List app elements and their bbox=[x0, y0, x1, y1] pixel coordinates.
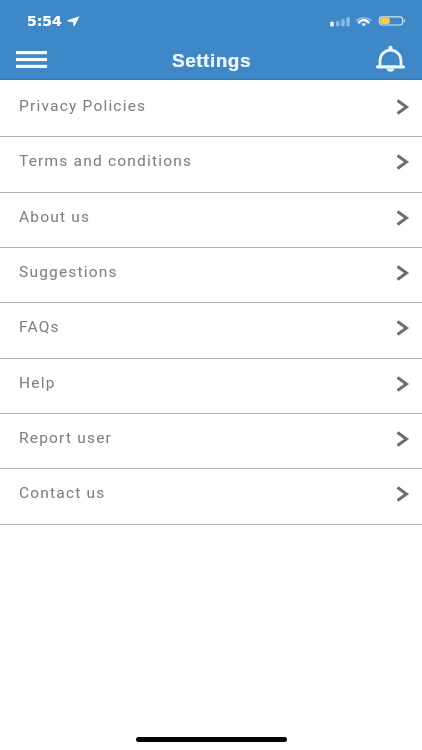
button[interactable]: Report user bbox=[0, 414, 422, 469]
staticText: Contact us bbox=[19, 484, 106, 502]
button[interactable]: Privacy Policies bbox=[0, 82, 422, 137]
button[interactable]: Contact us bbox=[0, 469, 422, 524]
staticText: Help bbox=[19, 374, 56, 392]
staticText: Terms and conditions bbox=[19, 152, 193, 170]
button[interactable]: Help bbox=[0, 359, 422, 414]
button[interactable]: Menu bbox=[6, 40, 56, 80]
staticText: Privacy Policies bbox=[19, 97, 147, 115]
staticText: FAQs bbox=[19, 318, 60, 336]
staticText: About us bbox=[19, 208, 91, 226]
button[interactable]: FAQs bbox=[0, 303, 422, 358]
staticText: Report user bbox=[19, 429, 113, 447]
button[interactable]: Suggestions bbox=[0, 248, 422, 303]
staticText: 5:54 bbox=[27, 13, 62, 29]
button[interactable]: Terms and conditions bbox=[0, 137, 422, 192]
button[interactable]: Notifications bbox=[366, 38, 414, 78]
staticText: Suggestions bbox=[19, 263, 118, 281]
button[interactable]: About us bbox=[0, 193, 422, 248]
staticText: Settings bbox=[172, 50, 251, 71]
